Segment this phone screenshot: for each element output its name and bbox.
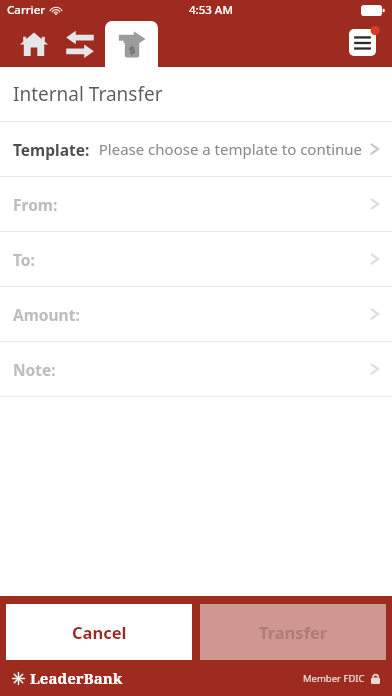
staticText: 4:53 AM [189,2,233,18]
staticText: Member FDIC [303,672,365,685]
button[interactable]: To: [0,232,392,286]
staticText: Amount: [13,304,80,325]
staticText: Transfer [259,621,328,643]
button[interactable]: Internal Transfer tab [105,21,158,67]
button[interactable]: Template: [0,122,392,176]
staticText: Cancel [72,621,127,643]
staticText: Template: [13,139,90,160]
button[interactable]: Transfers [58,24,102,64]
staticText: Please choose a template to continue [98,139,362,159]
button[interactable]: Note: [0,342,392,396]
staticText: Internal Transfer [13,81,163,107]
staticText: LeaderBank [30,668,123,688]
staticText: Note: [13,359,56,380]
button[interactable]: Transfer [200,604,386,660]
button[interactable]: Amount: [0,287,392,341]
staticText: From: [13,194,58,215]
button[interactable]: Menu [348,25,382,61]
staticText: To: [13,249,35,270]
button[interactable]: Home [12,24,56,64]
staticText: Carrier [7,2,46,18]
button[interactable]: From: [0,177,392,231]
button[interactable]: Cancel [6,604,192,660]
